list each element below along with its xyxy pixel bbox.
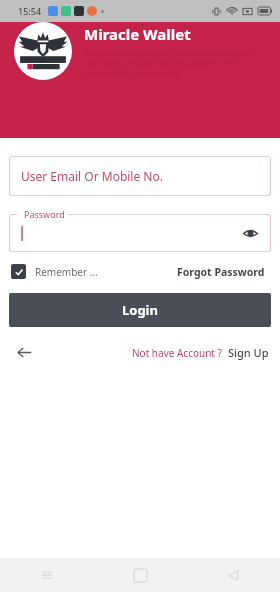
staticText: Not have Account ? <box>132 346 222 360</box>
staticText: Sign Up <box>228 345 269 360</box>
button[interactable]: User Email Or Mobile No. <box>9 156 271 196</box>
staticText: 15:54 <box>18 5 42 17</box>
staticText: Login <box>122 301 158 319</box>
staticText: Password <box>24 208 65 220</box>
button[interactable]: Login <box>9 293 271 327</box>
button[interactable]: Not have Account ? <box>132 345 269 360</box>
button[interactable]: Forgot Password <box>177 265 269 279</box>
staticText: Forgot Password <box>177 265 265 279</box>
staticText: Miracle Wallet <box>84 24 191 44</box>
button[interactable]: Remember ... <box>11 264 98 279</box>
staticText: User Email Or Mobile No. <box>21 168 163 184</box>
button[interactable]: Back <box>11 339 37 365</box>
staticText: else and do not use a simple password, t… <box>84 58 245 68</box>
button[interactable]: Show password <box>9 214 271 252</box>
staticText: Remember ... <box>35 265 98 279</box>
staticText: Please do not share your password with a… <box>84 48 253 58</box>
button[interactable]: Show password <box>237 220 263 246</box>
staticText: necessary for your security. <box>84 68 181 78</box>
